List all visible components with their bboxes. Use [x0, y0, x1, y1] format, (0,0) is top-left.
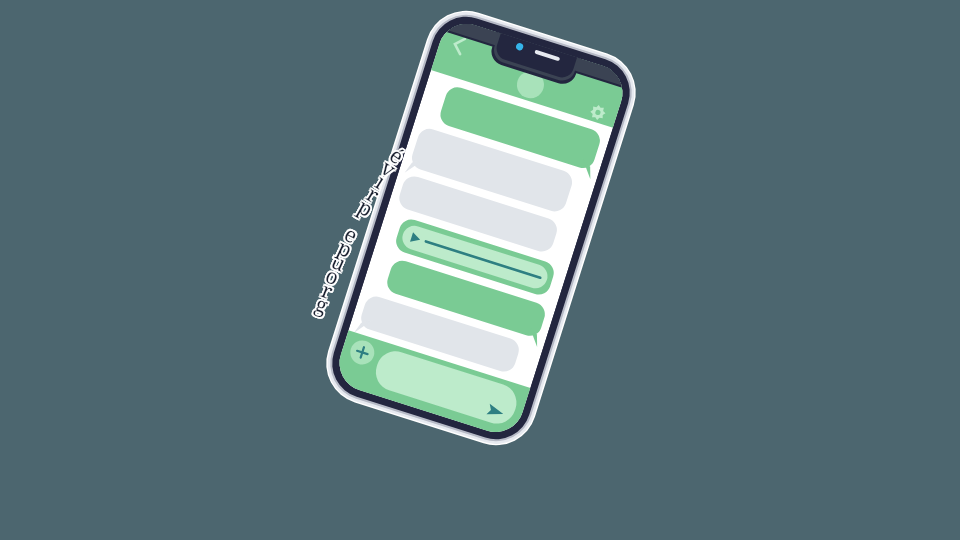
button[interactable]: Private group chat phone illustration — [0, 0, 960, 540]
